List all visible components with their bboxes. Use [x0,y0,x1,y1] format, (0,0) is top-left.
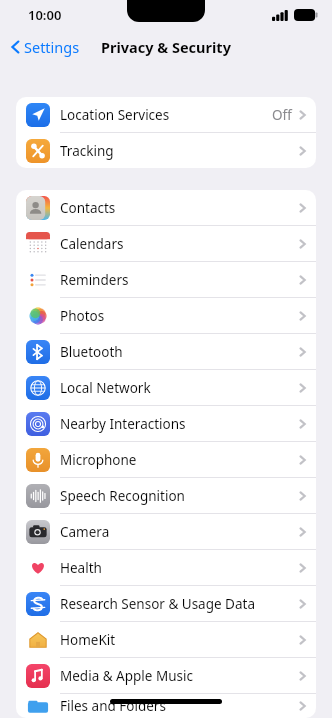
button[interactable]: Local Network [16,370,316,406]
button[interactable]: Location Services [16,97,316,133]
staticText: Media & Apple Music [60,667,297,685]
button[interactable]: Microphone [16,442,316,478]
button[interactable]: Speech Recognition [16,478,316,514]
staticText: Local Network [60,379,297,397]
staticText: Camera [60,523,297,541]
button[interactable]: Tracking [16,133,316,168]
button[interactable]: Research Sensor & Usage Data [16,586,316,622]
staticText: Photos [60,307,297,325]
staticText: Files and Folders [60,697,297,715]
button[interactable]: Settings [0,33,86,61]
button[interactable]: Contacts [16,190,316,226]
staticText: Settings [24,37,80,57]
button[interactable]: Bluetooth [16,334,316,370]
button[interactable]: Nearby Interactions [16,406,316,442]
staticText: Speech Recognition [60,487,297,505]
staticText: HomeKit [60,631,297,649]
staticText: Microphone [60,451,297,469]
staticText: Tracking [60,142,297,160]
staticText: Calendars [60,235,297,253]
button[interactable]: Calendars [16,226,316,262]
button[interactable]: Reminders [16,262,316,298]
staticText: Off [272,106,292,124]
staticText: Location Services [60,106,272,124]
button[interactable]: Files and Folders [16,694,316,718]
staticText: Reminders [60,271,297,289]
staticText: Research Sensor & Usage Data [60,595,297,613]
button[interactable]: Media & Apple Music [16,658,316,694]
button[interactable]: HomeKit [16,622,316,658]
staticText: Contacts [60,199,297,217]
button[interactable]: Health [16,550,316,586]
button[interactable]: Photos [16,298,316,334]
staticText: Privacy & Security [101,37,231,57]
button[interactable]: Camera [16,514,316,550]
staticText: Bluetooth [60,343,297,361]
staticText: Nearby Interactions [60,415,297,433]
staticText: Health [60,559,297,577]
staticText: 10:00 [28,6,62,24]
